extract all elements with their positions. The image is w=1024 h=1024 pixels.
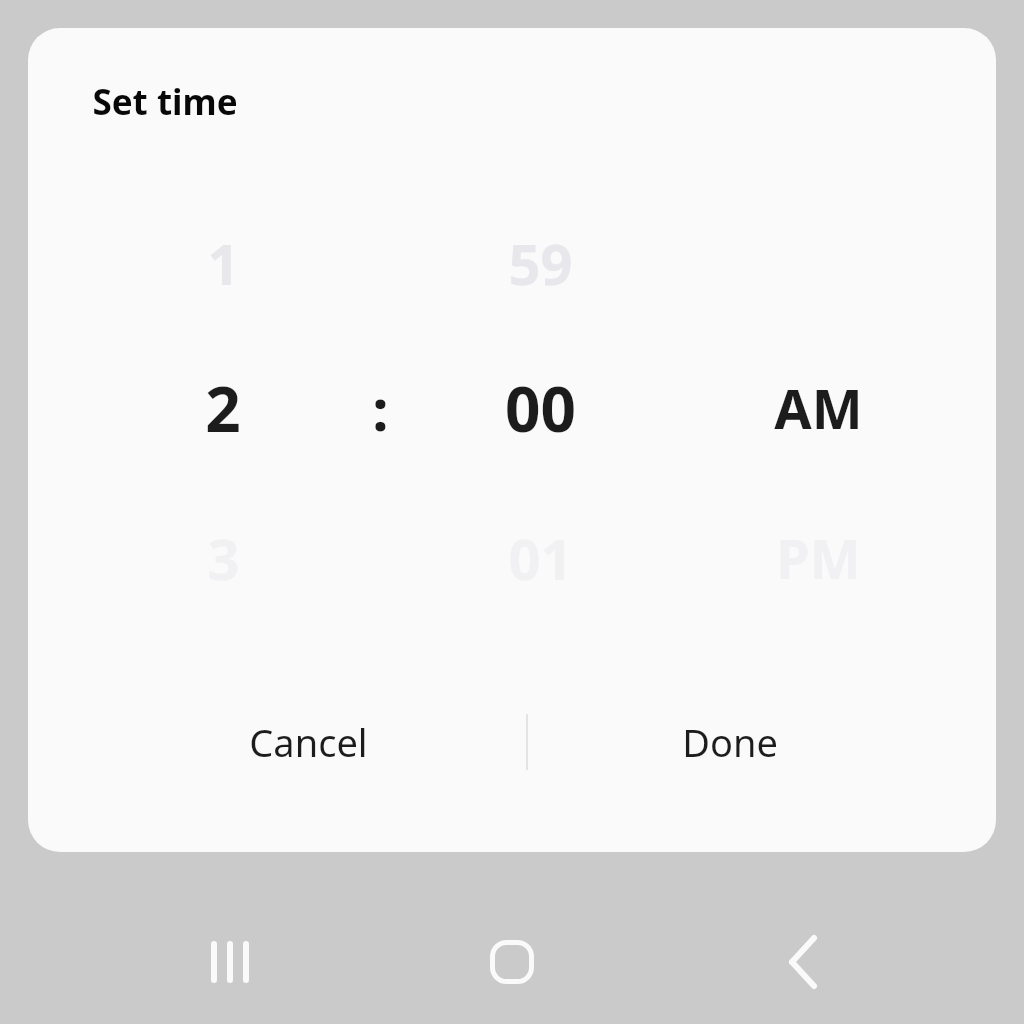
button[interactable]: Back [759, 918, 847, 1006]
staticText: 1 [207, 225, 240, 301]
staticText: : [372, 369, 389, 448]
button[interactable]: AM [708, 346, 928, 470]
staticText: 59 [508, 225, 573, 301]
button[interactable]: : [270, 346, 490, 470]
staticText: 01 [508, 520, 573, 596]
button[interactable]: Cancel [98, 692, 518, 792]
staticText: 3 [207, 520, 240, 596]
staticText: Cancel [249, 716, 368, 768]
staticText: Done [682, 716, 778, 768]
button[interactable]: Done [520, 692, 940, 792]
button[interactable]: Home [468, 918, 556, 1006]
staticText: Set time [92, 78, 238, 126]
button[interactable]: 00 [430, 346, 650, 470]
button[interactable]: Recents [186, 918, 274, 1006]
staticText: AM [774, 371, 863, 445]
staticText: 2 [205, 366, 241, 450]
button[interactable]: 2 [113, 346, 333, 470]
button[interactable]: 59 [430, 201, 650, 325]
staticText: 00 [505, 366, 576, 450]
staticText: PM [776, 521, 861, 595]
